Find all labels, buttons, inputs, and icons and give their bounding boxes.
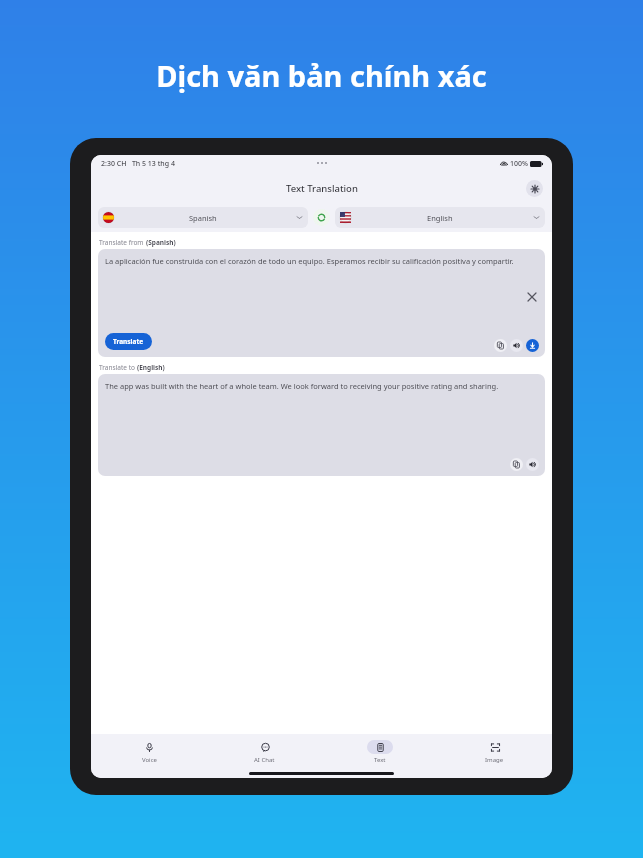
staticText: (English)	[137, 363, 165, 372]
button[interactable]: Listen	[510, 339, 523, 352]
staticText: 100%	[510, 159, 528, 169]
button[interactable]: Copy	[510, 458, 523, 471]
button[interactable]: Swap languages	[313, 209, 330, 226]
staticText: La aplicación fue construida con el cora…	[105, 256, 514, 266]
button[interactable]: Spanish	[98, 207, 308, 228]
staticText: Text	[374, 756, 386, 764]
staticText: Spanish	[189, 213, 217, 223]
button[interactable]: Translate	[113, 337, 144, 346]
staticText: Text Translation	[286, 182, 358, 195]
staticText: Translate	[113, 337, 144, 346]
button[interactable]: AI Chat	[207, 734, 322, 769]
staticText: 2:30 CH Th 5 13 thg 4	[101, 159, 175, 169]
button[interactable]: Voice	[91, 734, 207, 769]
staticText: (Spanish)	[146, 238, 176, 247]
button[interactable]: Listen	[526, 458, 539, 471]
staticText: English	[427, 213, 453, 223]
button[interactable]: Image	[437, 734, 552, 769]
button[interactable]: Copy	[494, 339, 507, 352]
staticText: Translate to	[99, 363, 137, 372]
button[interactable]: Settings	[526, 180, 543, 197]
staticText: Dịch văn bản chính xác	[0, 56, 643, 95]
staticText: Voice	[142, 756, 157, 764]
button[interactable]: Text	[322, 734, 437, 769]
staticText: AI Chat	[254, 756, 275, 764]
staticText: Image	[485, 756, 504, 764]
staticText: Translate from	[99, 238, 146, 247]
button[interactable]: Clear	[526, 291, 538, 303]
button[interactable]: English	[335, 207, 545, 228]
button[interactable]: Download	[526, 339, 539, 352]
staticText: The app was built with the heart of a wh…	[105, 381, 499, 391]
